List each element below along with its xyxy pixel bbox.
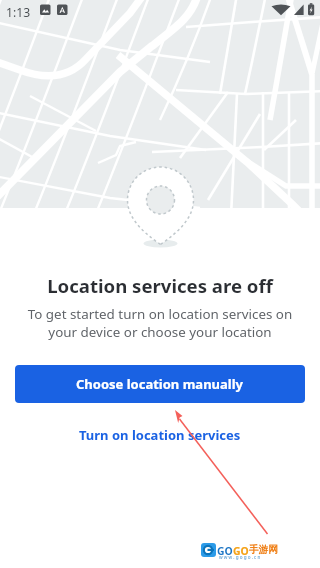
staticText: Location services are off: [0, 273, 320, 298]
staticText: Choose location manually: [76, 375, 244, 393]
staticText: Turn on location services: [79, 426, 241, 444]
staticText: 手游网: [249, 544, 278, 556]
staticText: www.gogo.cn: [219, 554, 262, 560]
staticText: 1:13: [6, 4, 31, 20]
button[interactable]: Choose location manually: [15, 365, 305, 403]
button[interactable]: Turn on location services: [67, 422, 253, 448]
staticText: GO: [233, 544, 249, 558]
staticText: GO: [217, 544, 233, 558]
staticText: To get started turn on location services…: [24, 305, 296, 341]
